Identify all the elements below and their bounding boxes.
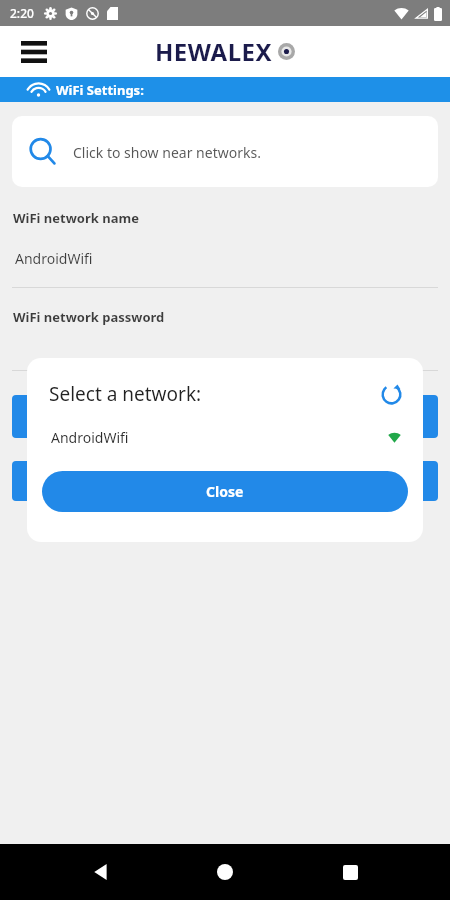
staticText: AndroidWifi bbox=[15, 249, 93, 268]
staticText: WiFi Settings: bbox=[56, 81, 144, 99]
staticText: HEWALEX bbox=[155, 35, 273, 68]
staticText: Click to show near networks. bbox=[73, 143, 261, 162]
button[interactable]: Connect to WiFi bbox=[12, 461, 438, 501]
button[interactable]: Click to show near networks. bbox=[12, 116, 438, 187]
staticText: Select a network: bbox=[49, 381, 202, 407]
staticText: AndroidWifi bbox=[51, 428, 129, 447]
button[interactable]: AndroidWifi bbox=[27, 424, 423, 450]
staticText: 2:20 bbox=[10, 5, 34, 21]
button[interactable]: Close bbox=[42, 471, 408, 512]
staticText: WiFi network password bbox=[13, 308, 165, 326]
staticText: Close bbox=[206, 482, 244, 501]
button[interactable]: Back bbox=[77, 848, 125, 896]
button[interactable]: Refresh network list bbox=[375, 378, 407, 410]
staticText: WiFi network name bbox=[13, 209, 139, 227]
button[interactable]: Open navigation menu bbox=[14, 32, 54, 72]
button[interactable]: Save WiFi settings bbox=[12, 395, 438, 438]
button[interactable]: Recent apps bbox=[326, 848, 374, 896]
button[interactable]: Home bbox=[201, 848, 249, 896]
